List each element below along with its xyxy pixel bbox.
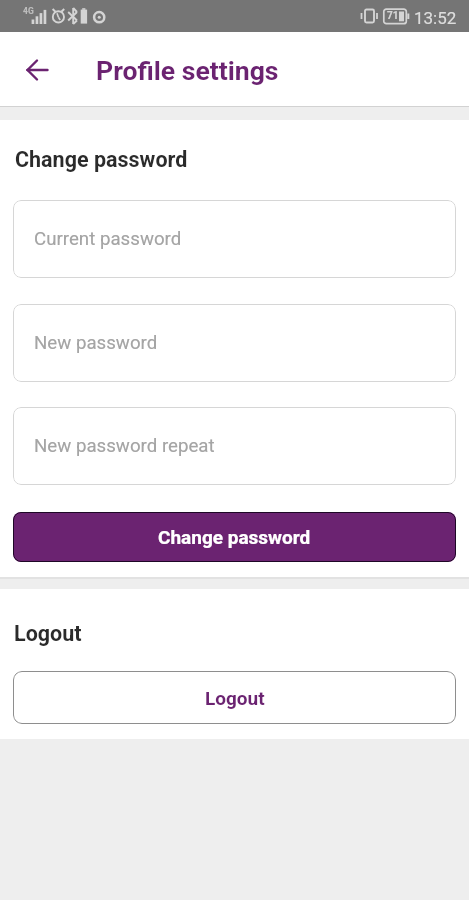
staticText: 71: [387, 10, 399, 22]
button[interactable]: Logout: [13, 671, 456, 724]
button[interactable]: New password: [13, 304, 456, 382]
button[interactable]: Change password: [13, 512, 456, 562]
staticText: New password: [34, 332, 158, 354]
staticText: Change password: [158, 526, 311, 548]
staticText: 13:52: [414, 8, 457, 28]
staticText: New password repeat: [34, 435, 215, 457]
button[interactable]: Back: [14, 46, 62, 94]
staticText: Current password: [34, 228, 182, 250]
staticText: Change password: [15, 147, 188, 172]
button[interactable]: Current password: [13, 200, 456, 278]
staticText: Logout: [14, 621, 82, 646]
button[interactable]: New password repeat: [13, 407, 456, 485]
staticText: 4G: [23, 6, 34, 16]
staticText: Logout: [205, 687, 265, 709]
staticText: Profile settings: [96, 55, 279, 86]
